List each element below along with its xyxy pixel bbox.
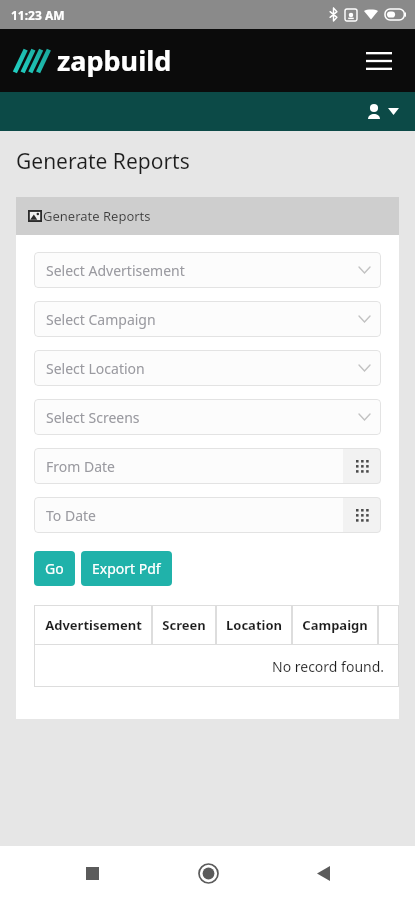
button[interactable]: Export Pdf bbox=[81, 551, 172, 586]
staticText: Generate Reports bbox=[43, 207, 151, 225]
staticText: Screen bbox=[162, 616, 206, 634]
button[interactable]: Select Location bbox=[34, 350, 381, 386]
staticText: 11:23 AM bbox=[11, 7, 65, 23]
staticText: Campaign bbox=[302, 616, 368, 634]
button[interactable]: Go bbox=[34, 551, 75, 586]
button[interactable]: zapbuild bbox=[12, 42, 172, 79]
staticText: To Date bbox=[46, 506, 96, 525]
staticText: Go bbox=[45, 559, 64, 578]
button[interactable]: Pick date bbox=[343, 497, 381, 533]
staticText: Location bbox=[226, 616, 282, 634]
staticText: Generate Reports bbox=[16, 147, 190, 176]
button[interactable]: Select Screens bbox=[34, 399, 381, 435]
button[interactable]: Pick date bbox=[343, 448, 381, 484]
button[interactable]: Home bbox=[184, 849, 232, 897]
button[interactable]: To Date bbox=[34, 497, 381, 533]
staticText: zapbuild bbox=[57, 42, 172, 79]
staticText: Select Location bbox=[46, 359, 359, 378]
staticText: Select Advertisement bbox=[46, 261, 359, 280]
button[interactable]: Recent apps bbox=[68, 849, 116, 897]
button[interactable]: Menu bbox=[357, 39, 401, 83]
button[interactable]: Account menu bbox=[363, 98, 403, 125]
button[interactable]: Select Advertisement bbox=[34, 252, 381, 288]
button[interactable]: Back bbox=[299, 849, 347, 897]
button[interactable]: Select Campaign bbox=[34, 301, 381, 337]
staticText: From Date bbox=[46, 457, 115, 476]
staticText: Select Screens bbox=[46, 408, 359, 427]
staticText: Advertisement bbox=[45, 616, 142, 634]
staticText: No record found. bbox=[272, 657, 385, 676]
staticText: Select Campaign bbox=[46, 310, 359, 329]
staticText: Export Pdf bbox=[92, 559, 161, 578]
button[interactable]: From Date bbox=[34, 448, 381, 484]
